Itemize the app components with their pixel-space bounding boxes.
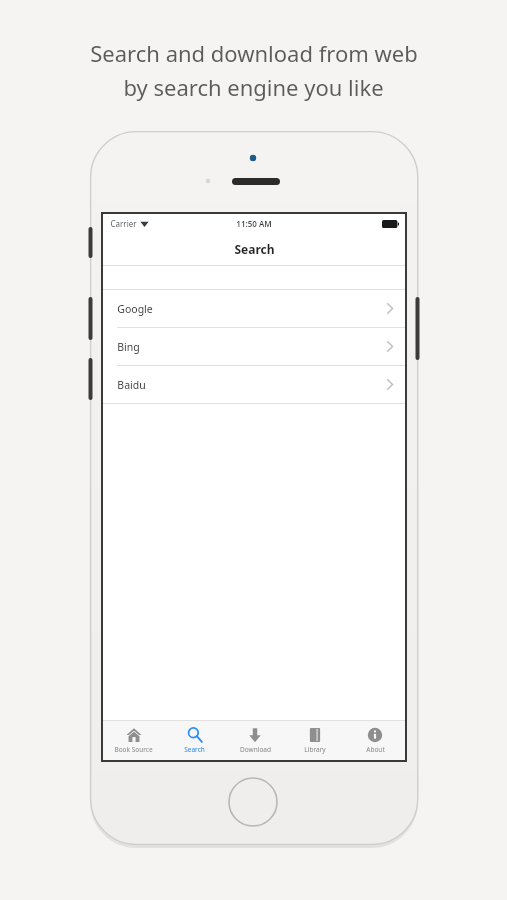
staticText: Search and download from web <box>90 38 418 68</box>
button[interactable]: About <box>345 721 405 760</box>
staticText: Bing <box>117 340 140 354</box>
button[interactable]: Download <box>225 721 285 760</box>
button[interactable]: Google <box>103 290 405 327</box>
button[interactable]: Book Source <box>103 721 164 760</box>
staticText: by search engine you like <box>123 72 384 102</box>
button[interactable]: Library <box>285 721 345 760</box>
staticText: About <box>366 745 385 754</box>
button[interactable]: Search <box>164 721 225 760</box>
button[interactable]: Bing <box>103 328 405 365</box>
staticText: Book Source <box>114 745 153 754</box>
staticText: Google <box>117 302 153 316</box>
staticText: Download <box>240 745 271 754</box>
staticText: Library <box>304 745 326 754</box>
staticText: Baidu <box>117 378 146 392</box>
staticText: Search <box>184 745 205 754</box>
staticText: Carrier <box>110 218 137 229</box>
button[interactable]: Baidu <box>103 366 405 403</box>
staticText: 11:50 AM <box>236 218 272 229</box>
staticText: Search <box>234 241 275 257</box>
